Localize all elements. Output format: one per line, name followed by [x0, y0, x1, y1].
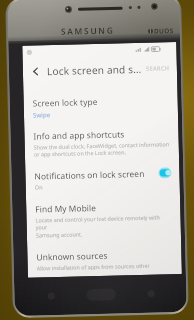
staticText: Unknown sources	[36, 250, 107, 262]
staticText: Find My Mobile	[35, 202, 96, 214]
button[interactable]: Find My Mobile	[35, 194, 175, 245]
button[interactable]: Navigate up	[28, 63, 44, 80]
staticText: Allow installation of apps from sources …	[37, 262, 150, 271]
button[interactable]: Info and app shortcuts	[33, 121, 173, 165]
button[interactable]: Notifications on lock screen	[34, 161, 174, 197]
staticText: SAMSUNG	[61, 24, 115, 38]
staticText: DUOS	[154, 26, 174, 36]
staticText: On	[35, 183, 43, 191]
staticText: Notifications on lock screen	[34, 168, 144, 181]
staticText: SEARCH	[146, 64, 170, 73]
staticText: Show the dual clock, FaceWidget, contact…	[34, 140, 170, 158]
button[interactable]: Screen lock type	[32, 88, 172, 125]
button[interactable]: SEARCH	[144, 62, 172, 75]
staticText: Screen lock type	[33, 96, 98, 109]
staticText: Info and app shortcuts	[33, 128, 125, 141]
staticText: Locate and control your lost device remo…	[35, 213, 173, 239]
staticText: Swipe	[33, 110, 51, 118]
staticText: Lock screen and security	[47, 62, 144, 78]
button[interactable]: Unknown sources	[36, 242, 176, 277]
button[interactable]: Notifications on lock screen toggle, on	[158, 168, 171, 177]
